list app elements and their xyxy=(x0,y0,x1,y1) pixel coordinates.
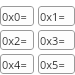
staticText: 0x4= xyxy=(2,57,27,72)
staticText: 0x1= xyxy=(40,9,65,24)
button[interactable]: 0x1= xyxy=(38,6,75,26)
staticText: 0x3= xyxy=(40,33,65,48)
button[interactable]: 0x5= xyxy=(38,54,75,74)
staticText: 0x2= xyxy=(2,33,27,48)
button[interactable]: 0x2= xyxy=(0,30,34,50)
button[interactable]: 0x3= xyxy=(38,30,75,50)
button[interactable]: 0x0= xyxy=(0,6,34,26)
staticText: 0x5= xyxy=(40,57,65,72)
button[interactable]: 0x4= xyxy=(0,54,34,74)
staticText: 0x0= xyxy=(2,9,27,24)
